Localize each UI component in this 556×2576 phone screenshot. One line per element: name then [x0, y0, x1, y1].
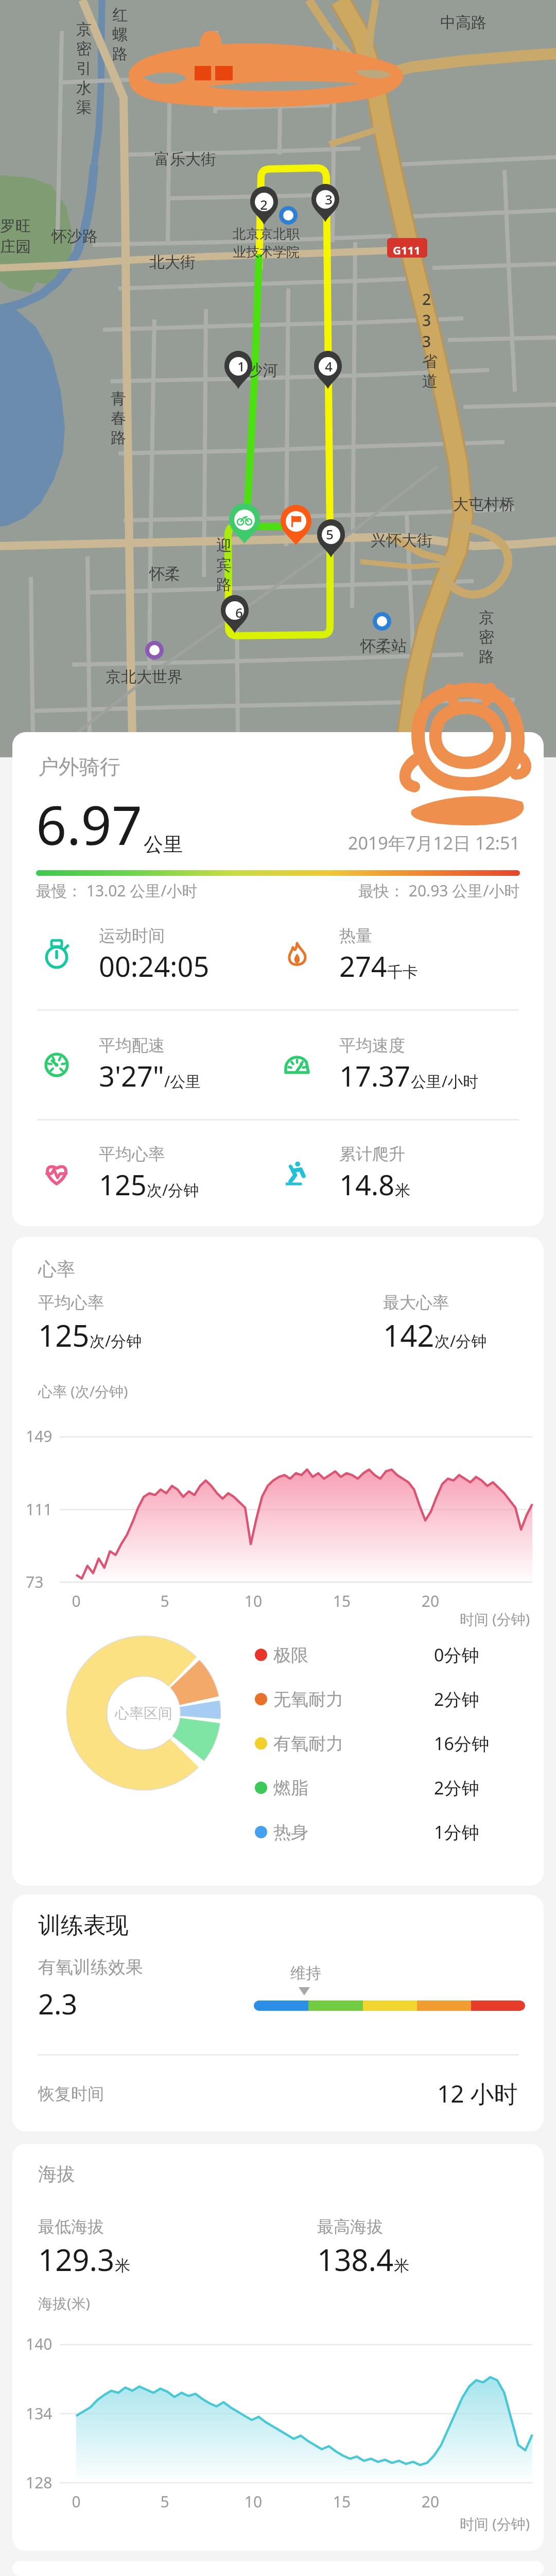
staticText: 16分钟 [434, 1732, 489, 1755]
staticText: 15 [329, 2491, 354, 2512]
staticText: 米 [115, 2256, 130, 2276]
staticText: 0分钟 [434, 1643, 479, 1667]
staticText: 5 [326, 525, 334, 543]
staticText: 有氧耐力 [273, 1733, 343, 1755]
staticText: 怀柔 [149, 564, 180, 584]
staticText: 沙河 [247, 361, 278, 380]
staticText: 迎 [216, 536, 232, 555]
staticText: 无氧耐力 [273, 1688, 343, 1710]
staticText: 最低海拔 [38, 2216, 104, 2237]
staticText: 时间 (分钟) [460, 1609, 530, 1629]
staticText: 热身 [273, 1821, 308, 1843]
staticText: 密 [479, 628, 494, 647]
staticText: 1分钟 [434, 1820, 479, 1844]
staticText: 6 [235, 603, 243, 621]
staticText: 春 [111, 409, 126, 428]
staticText: 15 [329, 1590, 354, 1612]
staticText: 北京京北职 业技术学院 [233, 226, 300, 261]
staticText: 1 [237, 357, 245, 375]
staticText: 京北大世界 [106, 667, 183, 687]
staticText: 3 [325, 190, 333, 208]
staticText: 次/分钟 [435, 1330, 487, 1351]
staticText: 海拔 [38, 2162, 75, 2185]
staticText: 10 [241, 1590, 266, 1612]
staticText: /公里 [164, 1071, 201, 1092]
staticText: 训练表现 [38, 1911, 129, 1940]
staticText: 心率区间 [115, 1704, 172, 1722]
staticText: 道 [422, 371, 438, 391]
staticText: 6.97 [36, 788, 143, 861]
staticText: 红 [112, 5, 128, 25]
staticText: 0 [64, 2491, 89, 2512]
staticText: 路 [112, 44, 128, 64]
staticText: 125 [38, 1315, 90, 1355]
staticText: 最大心率 [383, 1292, 449, 1313]
staticText: 户外骑行 [38, 754, 120, 779]
staticText: 路 [216, 575, 232, 595]
staticText: 140 [26, 2333, 53, 2354]
staticText: 134 [26, 2403, 53, 2424]
staticText: 274 [339, 947, 387, 985]
staticText: 累计爬升 [339, 1144, 405, 1164]
staticText: 次/分钟 [90, 1330, 142, 1351]
staticText: 2分钟 [434, 1687, 479, 1711]
staticText: G111 [393, 242, 421, 258]
staticText: 3'27" [99, 1057, 164, 1095]
staticText: 平均速度 [339, 1035, 405, 1056]
staticText: 111 [26, 1499, 53, 1520]
staticText: 公里 [144, 832, 183, 857]
staticText: 142 [383, 1315, 435, 1355]
staticText: 心率 [38, 1258, 75, 1281]
staticText: 路 [479, 647, 494, 667]
staticText: 维持 [290, 1963, 321, 1983]
staticText: 10 [241, 2491, 266, 2512]
staticText: 5 [152, 2491, 177, 2512]
staticText: 平均配速 [99, 1035, 165, 1056]
staticText: 恢复时间 [38, 2083, 104, 2104]
staticText: 水 [76, 78, 92, 98]
staticText: 12 小时 [437, 2077, 518, 2110]
staticText: 公里/小时 [411, 1071, 479, 1092]
staticText: 大屯村桥 [453, 495, 515, 514]
staticText: 3 [422, 331, 431, 352]
staticText: 3 [422, 310, 431, 331]
staticText: 海拔(米) [38, 2293, 90, 2313]
staticText: 5 [152, 1590, 177, 1612]
staticText: 2分钟 [434, 1776, 479, 1800]
staticText: 省 [422, 352, 438, 371]
staticText: 4 [325, 357, 333, 375]
staticText: 17.37 [339, 1057, 411, 1095]
staticText: 20 [418, 2491, 443, 2512]
staticText: 73 [26, 1571, 44, 1592]
staticText: 中高路 [440, 13, 486, 32]
staticText: 有氧训练效果 [38, 1956, 143, 1978]
staticText: 0 [64, 1590, 89, 1612]
staticText: 平均心率 [38, 1292, 104, 1313]
staticText: 千卡 [387, 962, 418, 982]
staticText: 最高海拔 [317, 2216, 383, 2237]
staticText: 怀柔站 [360, 636, 407, 656]
staticText: 时间 (分钟) [460, 2514, 530, 2533]
staticText: 米 [394, 2256, 409, 2276]
staticText: 兴怀大街 [371, 531, 432, 550]
staticText: 2.3 [38, 1985, 78, 2023]
staticText: 极限 [273, 1644, 308, 1666]
staticText: 燃脂 [273, 1777, 308, 1799]
staticText: 运动时间 [99, 925, 165, 946]
staticText: 螺 [112, 25, 128, 44]
staticText: 渠 [76, 98, 92, 117]
staticText: 138.4 [317, 2239, 394, 2280]
staticText: 最慢： 13.02 公里/小时 [36, 880, 198, 901]
staticText: 富乐大街 [154, 149, 216, 169]
staticText: 129.3 [38, 2239, 115, 2280]
staticText: 米 [395, 1181, 410, 1200]
staticText: 14.8 [339, 1165, 395, 1204]
staticText: 北大街 [149, 252, 196, 272]
staticText: 125 [99, 1165, 147, 1204]
staticText: 宾 [216, 555, 232, 575]
staticText: 2 [260, 195, 268, 213]
staticText: 2 [422, 289, 431, 310]
staticText: 怀沙路 [51, 227, 98, 246]
staticText: 次/分钟 [147, 1179, 199, 1200]
staticText: 引 [76, 59, 92, 78]
